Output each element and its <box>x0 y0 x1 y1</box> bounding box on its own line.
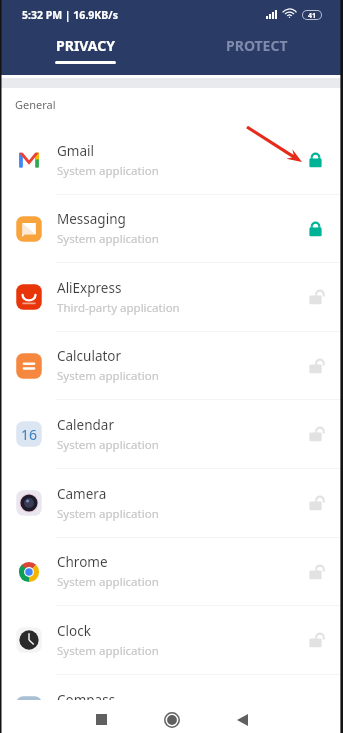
button[interactable]: Unlocked <box>303 560 327 584</box>
staticText: General <box>15 97 56 112</box>
button[interactable]: PROTECT <box>171 29 343 75</box>
button[interactable]: Unlocked <box>303 628 327 652</box>
staticText: Gmail <box>57 142 94 160</box>
staticText: System application <box>57 643 159 659</box>
staticText: Third-party application <box>57 300 180 316</box>
button[interactable]: PRIVACY <box>0 29 171 75</box>
staticText: 16 <box>21 425 38 444</box>
button[interactable]: 16 <box>0 400 343 469</box>
button[interactable]: AliExpress <box>0 263 343 332</box>
button[interactable]: Home <box>152 706 192 733</box>
button[interactable]: Locked <box>303 217 327 241</box>
button[interactable]: Messaging <box>0 195 343 263</box>
button[interactable]: Unlocked <box>303 354 327 378</box>
staticText: PRIVACY <box>56 36 116 55</box>
button[interactable]: Clock <box>0 606 343 675</box>
button[interactable]: Gmail <box>0 126 343 195</box>
button[interactable]: Back <box>222 706 262 733</box>
button[interactable]: Locked <box>303 148 327 172</box>
staticText: Compass <box>57 691 116 700</box>
button[interactable]: Camera <box>0 469 343 538</box>
staticText: 41 <box>308 11 317 19</box>
staticText: Chrome <box>57 553 108 571</box>
staticText: System application <box>57 574 159 590</box>
staticText: System application <box>57 368 159 384</box>
button[interactable]: Unlocked <box>303 285 327 309</box>
staticText: Calendar <box>57 416 114 434</box>
button[interactable]: Unlocked <box>303 491 327 515</box>
staticText: Clock <box>57 622 91 640</box>
staticText: System application <box>57 506 159 522</box>
button[interactable]: Calculator <box>0 332 343 400</box>
button[interactable]: Recents <box>81 706 121 733</box>
button[interactable]: Compass <box>0 675 343 700</box>
button[interactable]: Unlocked <box>303 422 327 446</box>
staticText: AliExpress <box>57 279 122 297</box>
staticText: System application <box>57 163 159 179</box>
staticText: PROTECT <box>226 36 288 55</box>
staticText: 5:32 PM | 16.9KB/s <box>22 8 118 22</box>
button[interactable]: Chrome <box>0 538 343 606</box>
staticText: Calculator <box>57 347 122 365</box>
staticText: System application <box>57 437 159 453</box>
staticText: Messaging <box>57 210 126 228</box>
staticText: Camera <box>57 485 107 503</box>
staticText: System application <box>57 231 159 247</box>
